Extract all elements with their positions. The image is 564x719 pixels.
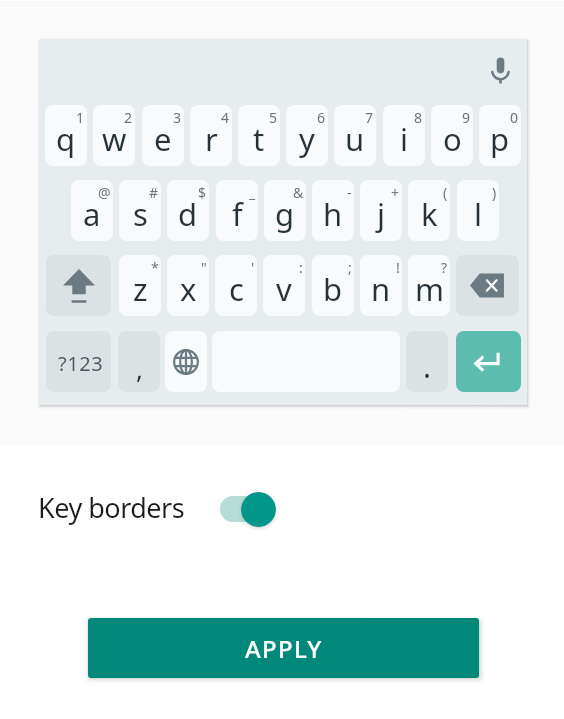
staticText: 9 <box>462 108 471 127</box>
staticText: . <box>423 346 432 387</box>
button[interactable]: Voice input <box>482 52 518 88</box>
button[interactable]: + <box>360 180 402 241</box>
staticText: h <box>323 193 343 235</box>
staticText: n <box>371 268 391 310</box>
button[interactable]: _ <box>216 180 258 241</box>
staticText: ( <box>443 183 448 202</box>
staticText: t <box>253 118 265 160</box>
staticText: z <box>133 268 148 310</box>
staticText: : <box>299 258 303 277</box>
staticText: * <box>151 258 159 277</box>
staticText: f <box>232 193 243 235</box>
staticText: ; <box>348 258 352 277</box>
staticText: u <box>345 118 365 160</box>
button[interactable]: 9 <box>431 105 473 166</box>
staticText: ' <box>251 258 255 277</box>
button[interactable]: ?123 <box>46 331 111 392</box>
staticText: # <box>149 183 159 202</box>
staticText: @ <box>98 183 111 202</box>
staticText: " <box>201 258 207 277</box>
button[interactable]: 1 <box>45 105 87 166</box>
staticText: 3 <box>173 108 182 127</box>
button[interactable]: 3 <box>142 105 184 166</box>
staticText: 4 <box>221 108 230 127</box>
staticText: p <box>490 118 510 160</box>
staticText: k <box>421 193 438 235</box>
staticText: + <box>391 183 400 202</box>
button[interactable]: - <box>312 180 354 241</box>
staticText: c <box>229 268 244 310</box>
staticText: ) <box>492 183 497 202</box>
staticText: 1 <box>76 108 85 127</box>
staticText: ?123 <box>58 350 104 377</box>
button[interactable]: ( <box>408 180 450 241</box>
button[interactable]: , <box>118 331 160 392</box>
button[interactable]: 2 <box>93 105 135 166</box>
button[interactable]: Key borders toggle <box>213 484 285 534</box>
staticText: 7 <box>365 108 374 127</box>
staticText: x <box>180 268 197 310</box>
staticText: l <box>474 193 482 235</box>
staticText: 2 <box>124 108 133 127</box>
button[interactable]: Language <box>165 331 207 392</box>
button[interactable]: ' <box>215 255 257 316</box>
staticText: s <box>133 193 148 235</box>
button[interactable]: : <box>263 255 305 316</box>
staticText: i <box>400 118 408 160</box>
staticText: o <box>443 118 462 160</box>
button[interactable]: 6 <box>286 105 328 166</box>
staticText: 8 <box>414 108 423 127</box>
button[interactable]: * <box>119 255 161 316</box>
staticText: w <box>102 118 127 160</box>
staticText: _ <box>249 183 256 202</box>
staticText: & <box>293 183 304 202</box>
button[interactable]: ) <box>457 180 499 241</box>
staticText: ! <box>396 258 400 277</box>
button[interactable]: " <box>167 255 209 316</box>
staticText: 6 <box>317 108 326 127</box>
button[interactable]: # <box>119 180 161 241</box>
staticText: APPLY <box>245 632 323 665</box>
staticText: y <box>299 118 315 160</box>
staticText: 5 <box>269 108 278 127</box>
staticText: g <box>275 193 295 235</box>
button[interactable]: Shift <box>46 255 111 316</box>
button[interactable]: 8 <box>383 105 425 166</box>
button[interactable]: . <box>406 331 448 392</box>
staticText: d <box>178 193 198 235</box>
staticText: 0 <box>510 108 519 127</box>
button[interactable]: 4 <box>190 105 232 166</box>
staticText: r <box>205 118 218 160</box>
button[interactable]: 5 <box>238 105 280 166</box>
button[interactable]: @ <box>71 180 113 241</box>
button[interactable]: Backspace <box>456 255 519 316</box>
staticText: m <box>415 268 444 310</box>
button[interactable]: ; <box>312 255 354 316</box>
button[interactable]: 7 <box>334 105 376 166</box>
button[interactable]: ! <box>360 255 402 316</box>
button[interactable]: Enter <box>456 331 521 392</box>
staticText: j <box>377 193 385 235</box>
button[interactable]: 0 <box>479 105 521 166</box>
staticText: q <box>56 118 76 160</box>
staticText: e <box>154 118 172 160</box>
staticText: b <box>323 268 343 310</box>
staticText: Key borders <box>38 489 185 526</box>
staticText: ? <box>441 258 448 277</box>
staticText: v <box>276 268 292 310</box>
button[interactable]: ? <box>408 255 450 316</box>
staticText: a <box>83 193 101 235</box>
button[interactable]: $ <box>167 180 209 241</box>
staticText: - <box>347 183 352 202</box>
staticText: , <box>136 351 143 386</box>
staticText: $ <box>198 183 207 202</box>
button[interactable]: APPLY <box>88 618 479 678</box>
button[interactable]: & <box>264 180 306 241</box>
